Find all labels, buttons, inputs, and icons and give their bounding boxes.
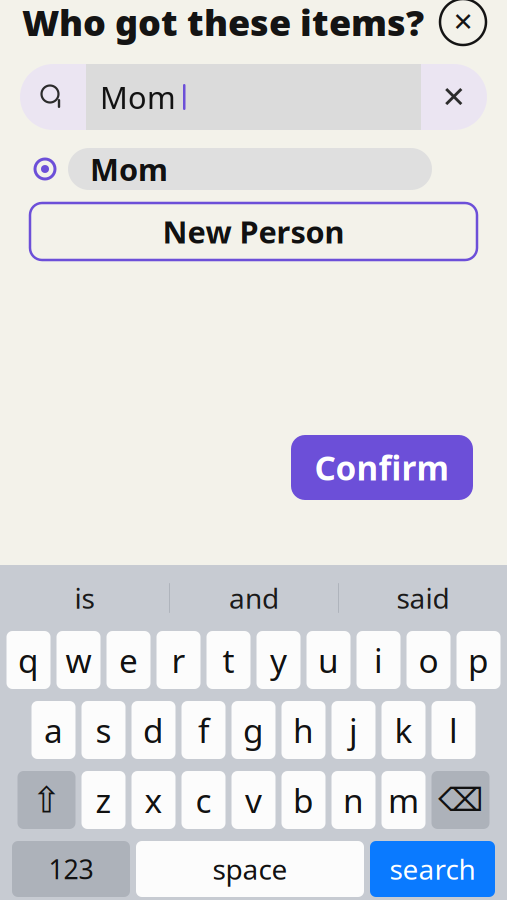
staticText: Who got these items?	[22, 0, 424, 46]
button[interactable]: v	[231, 771, 275, 829]
button[interactable]: Shift	[17, 771, 75, 829]
button[interactable]: m	[381, 771, 425, 829]
button[interactable]: Confirm	[291, 435, 473, 500]
button[interactable]: e	[106, 631, 150, 689]
button[interactable]: s	[81, 701, 125, 759]
button[interactable]: a	[31, 701, 75, 759]
staticText: y	[270, 638, 287, 682]
staticText: u	[318, 638, 339, 682]
staticText: New Person	[162, 211, 344, 252]
staticText: e	[119, 638, 138, 682]
staticText: ✕	[441, 80, 466, 114]
staticText: said	[396, 579, 449, 617]
button[interactable]: is	[0, 565, 169, 631]
staticText: r	[171, 638, 185, 682]
button[interactable]: space	[136, 841, 364, 897]
button[interactable]: r	[156, 631, 200, 689]
button[interactable]: y	[256, 631, 300, 689]
button[interactable]: Close	[439, 0, 487, 46]
staticText: Mom	[90, 149, 168, 189]
staticText: search	[389, 850, 475, 888]
button[interactable]: k	[381, 701, 425, 759]
staticText: g	[243, 708, 264, 752]
button[interactable]: New Person	[30, 203, 477, 260]
staticText: t	[222, 638, 234, 682]
button[interactable]: c	[181, 771, 225, 829]
staticText: z	[95, 778, 111, 822]
staticText: space	[212, 850, 287, 888]
button[interactable]: p	[456, 631, 500, 689]
staticText: f	[198, 708, 209, 752]
button[interactable]: t	[206, 631, 250, 689]
staticText: w	[65, 638, 91, 682]
staticText: p	[468, 638, 489, 682]
button[interactable]: Delete	[431, 771, 489, 829]
staticText: ✕	[452, 8, 473, 36]
button[interactable]: j	[331, 701, 375, 759]
staticText: x	[144, 778, 162, 822]
staticText: b	[293, 778, 314, 822]
staticText: i	[374, 638, 383, 682]
button[interactable]: d	[131, 701, 175, 759]
staticText: 123	[48, 851, 93, 887]
staticText: q	[18, 638, 39, 682]
staticText: is	[74, 579, 94, 617]
staticText: ⇧	[31, 780, 61, 820]
button[interactable]: b	[281, 771, 325, 829]
button[interactable]: f	[181, 701, 225, 759]
staticText: j	[349, 708, 358, 752]
staticText: h	[293, 708, 314, 752]
button[interactable]: w	[56, 631, 100, 689]
button[interactable]: Mom	[68, 148, 432, 190]
staticText: n	[343, 778, 364, 822]
staticText: v	[245, 778, 262, 822]
button[interactable]: n	[331, 771, 375, 829]
staticText: a	[44, 708, 63, 752]
button[interactable]: q	[6, 631, 50, 689]
staticText: and	[229, 579, 279, 617]
button[interactable]: i	[356, 631, 400, 689]
staticText: s	[95, 708, 111, 752]
button[interactable]: o	[406, 631, 450, 689]
button[interactable]: 123	[12, 841, 130, 897]
button[interactable]: x	[131, 771, 175, 829]
button[interactable]: Mom, selected	[22, 148, 68, 190]
staticText: d	[143, 708, 164, 752]
staticText: k	[394, 708, 412, 752]
staticText: Confirm	[314, 445, 449, 490]
staticText: o	[418, 638, 438, 682]
button[interactable]: and	[170, 565, 338, 631]
staticText: l	[449, 708, 458, 752]
button[interactable]: Mom	[20, 64, 487, 130]
button[interactable]: g	[231, 701, 275, 759]
staticText: ⌫	[438, 782, 483, 818]
staticText: Mom	[100, 77, 176, 117]
staticText: m	[388, 778, 419, 822]
button[interactable]: l	[431, 701, 475, 759]
staticText: c	[195, 778, 211, 822]
button[interactable]: u	[306, 631, 350, 689]
button[interactable]: z	[81, 771, 125, 829]
button[interactable]: search	[370, 841, 495, 897]
button[interactable]: h	[281, 701, 325, 759]
button[interactable]: said	[339, 565, 507, 631]
